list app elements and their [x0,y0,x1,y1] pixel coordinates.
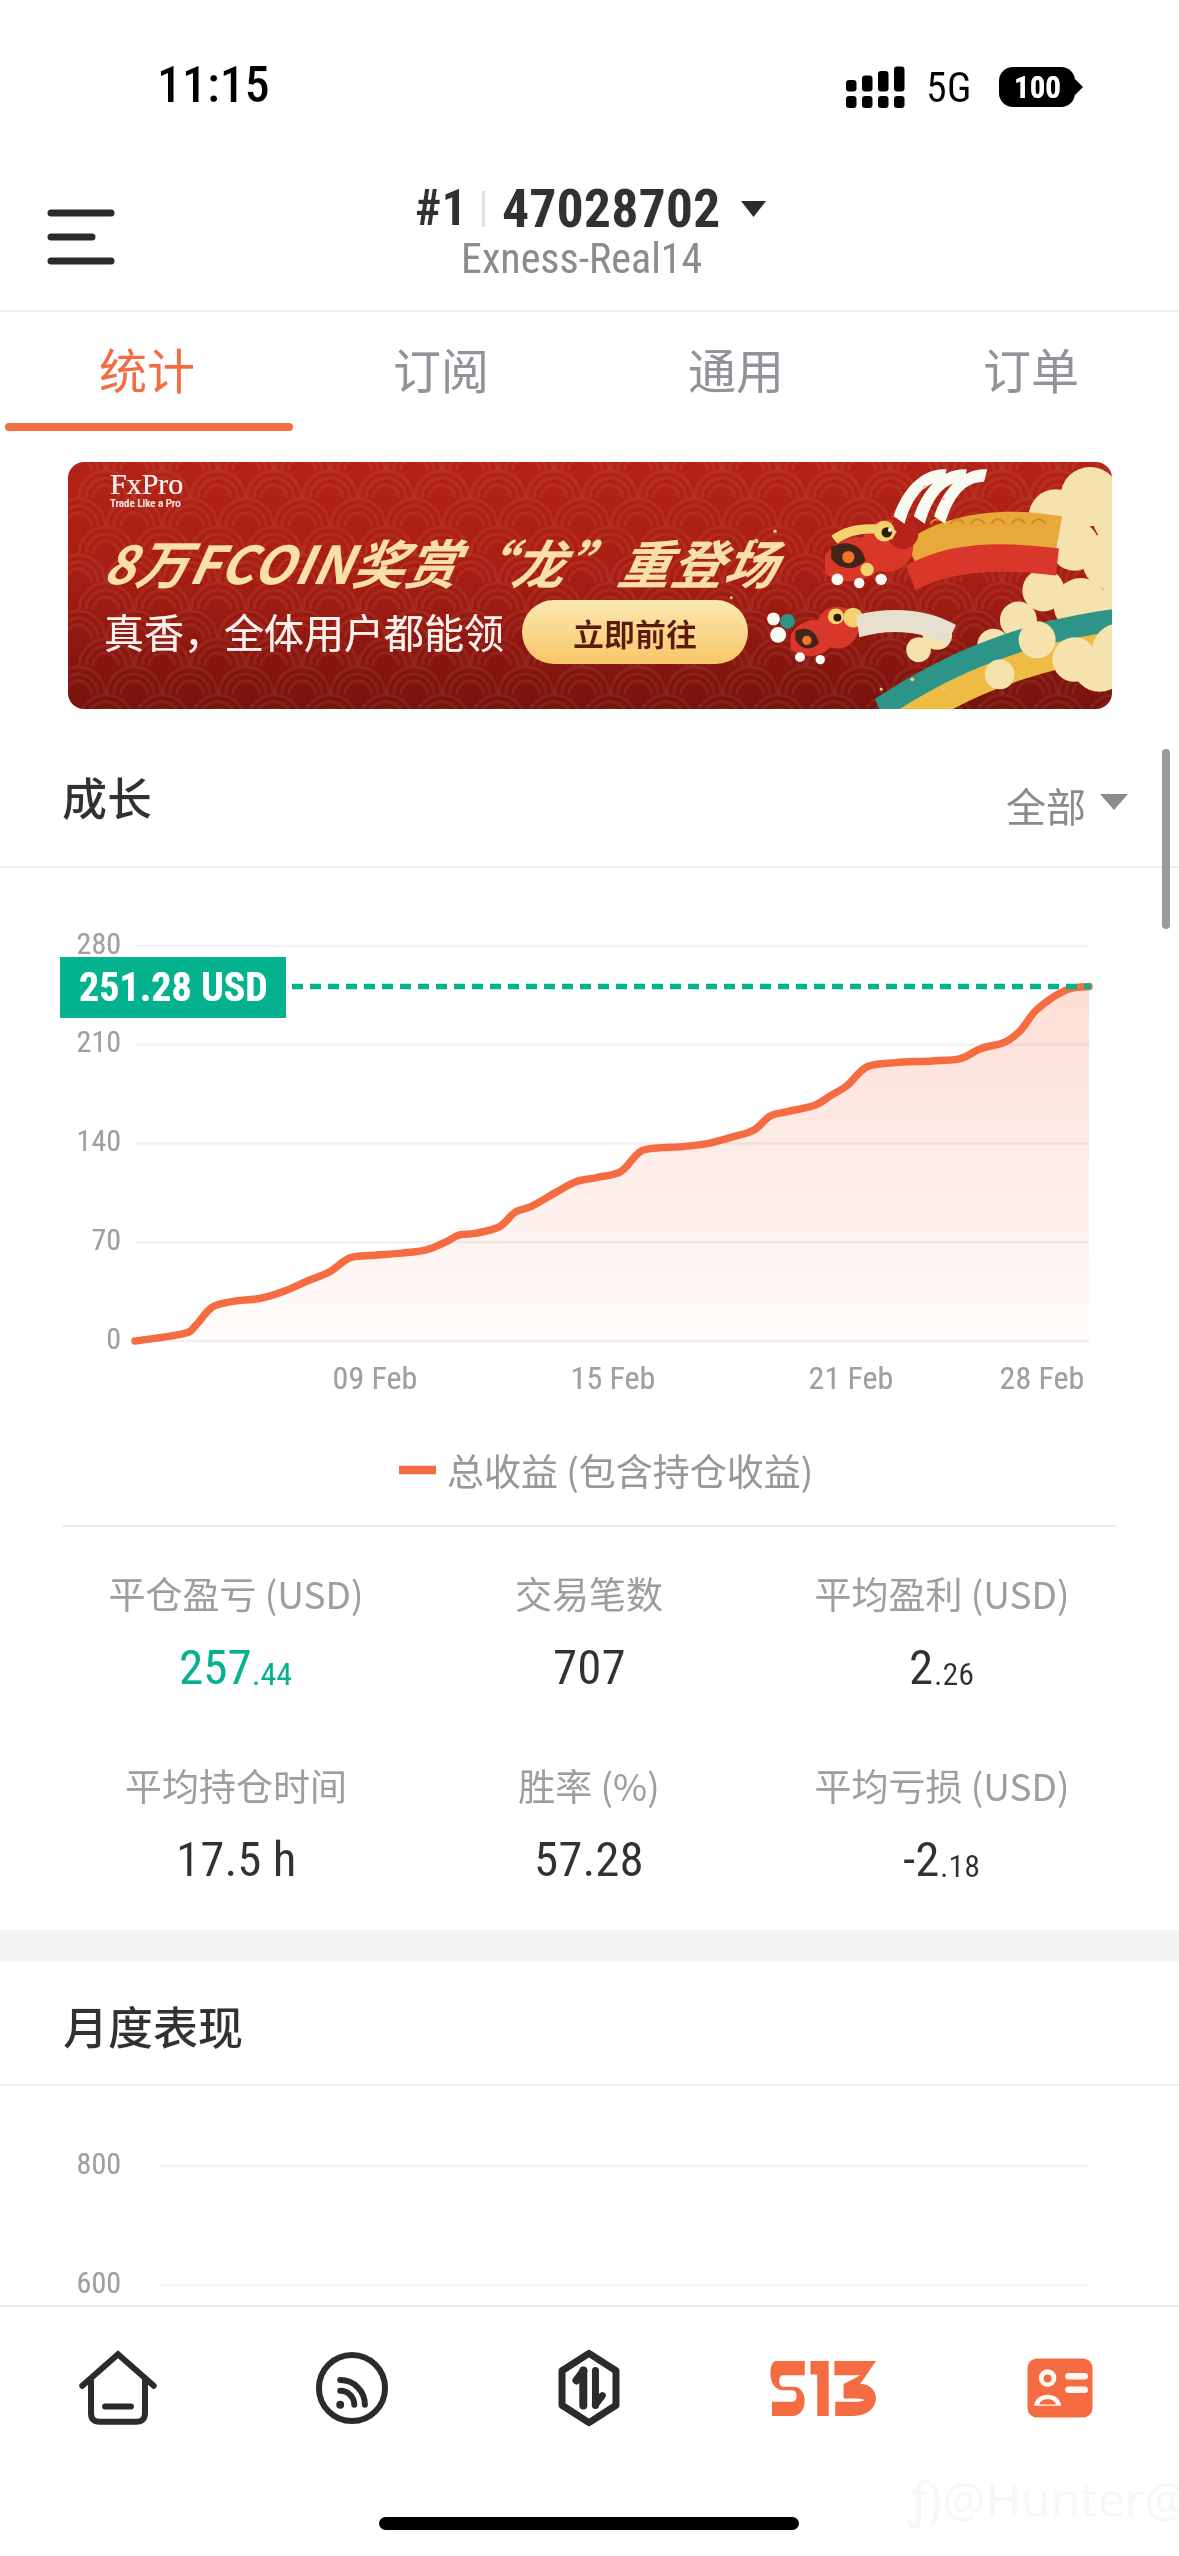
staticText: 8万FCOIN奖赏“龙”重登场 [102,524,776,599]
staticText: 11:15 [157,56,270,115]
staticText: 09 Feb [285,1359,465,1397]
button[interactable]: Trade [531,2330,647,2446]
staticText: 47028702 [502,177,721,240]
button[interactable]: 立即前往 [522,600,748,664]
staticText: 成长 [62,764,153,829]
staticText: 100 [1014,69,1061,105]
staticText: #1 [415,179,467,238]
staticText: 5G [926,63,972,112]
staticText: -2 [903,1831,940,1888]
staticText: 交易笔数 [349,1566,829,1620]
staticText: .44 [252,1655,293,1693]
staticText: 真香，全体用户都能领 [104,602,504,660]
staticText: Trade Like a Pro [110,497,181,510]
button[interactable]: 订单 [884,312,1179,424]
staticText: .26 [934,1655,975,1693]
staticText: 0 [0,1321,121,1356]
staticText: 订单 [983,333,1080,403]
staticText: 210 [0,1024,121,1059]
staticText: 胜率 (%) [349,1758,829,1812]
button[interactable]: #1 [415,177,766,240]
staticText: 平均亏损 (USD) [702,1758,1179,1812]
staticText: 统计 [99,333,196,403]
staticText: 707 [553,1639,626,1696]
staticText: 立即前往 [573,610,697,655]
staticText: 800 [0,2146,121,2181]
staticText: 21 Feb [761,1359,941,1397]
staticText: 140 [0,1123,121,1158]
staticText: 70 [0,1222,121,1257]
button[interactable]: Home [60,2330,176,2446]
button[interactable]: FxPro [68,462,1112,709]
button[interactable]: 统计 [0,312,294,424]
staticText: 257 [179,1639,252,1696]
staticText: 57.28 [534,1831,644,1888]
staticText: 月度表现 [63,1993,244,2058]
staticText: 600 [0,2265,121,2300]
button[interactable]: 订阅 [294,312,589,424]
staticText: 总收益 (包含持仓收益) [447,1443,814,1497]
staticText: FxPro [110,467,184,500]
staticText: 28 Feb [952,1359,1132,1397]
button[interactable]: 通用 [589,312,884,424]
staticText: 2 [909,1639,934,1696]
staticText: 280 [0,926,121,961]
staticText: .18 [940,1847,981,1885]
staticText: 251.28 USD [79,964,268,1011]
staticText: 17.5 h [176,1831,297,1888]
button[interactable]: Profile [1002,2330,1118,2446]
button[interactable]: Menu [36,190,126,290]
staticText: 通用 [688,333,785,403]
button[interactable]: S13 [766,2330,882,2446]
button[interactable]: Signals [294,2330,410,2446]
staticText: Exness-Real14 [461,234,703,283]
staticText: 平均盈利 (USD) [702,1566,1179,1620]
staticText: 订阅 [393,333,490,403]
staticText: 平仓盈亏 (USD) [0,1566,476,1620]
staticText: 全部 [1006,776,1086,828]
button[interactable]: 全部 [1006,776,1128,828]
staticText: 15 Feb [523,1359,703,1397]
staticText: 平均持仓时间 [0,1758,476,1812]
